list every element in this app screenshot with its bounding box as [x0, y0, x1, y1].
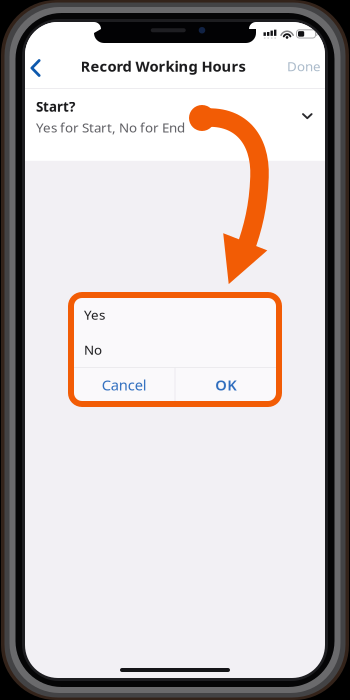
button[interactable]: Back	[25, 44, 55, 88]
staticText: Yes for Start, No for End	[36, 118, 185, 136]
staticText: No	[84, 341, 102, 358]
button[interactable]: Yes	[74, 297, 276, 332]
staticText: Yes	[84, 306, 105, 323]
button[interactable]: Start?	[25, 89, 325, 161]
button[interactable]: OK	[175, 368, 276, 402]
staticText: Record Working Hours	[80, 56, 245, 76]
button[interactable]: No	[74, 332, 276, 367]
button[interactable]: Done	[275, 44, 325, 88]
button[interactable]: Cancel	[74, 368, 175, 402]
staticText: Done	[287, 57, 321, 75]
staticText: Cancel	[102, 375, 147, 395]
staticText: OK	[215, 375, 236, 395]
staticText: Start?	[36, 98, 75, 115]
